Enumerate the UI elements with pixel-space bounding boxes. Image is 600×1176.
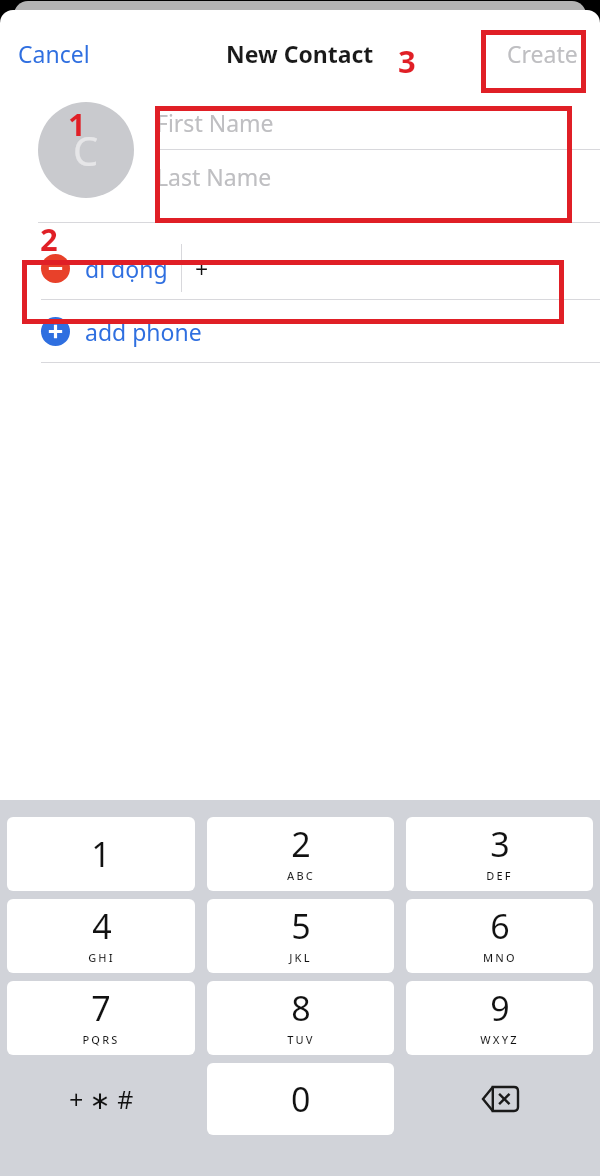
button[interactable]: add phone: [0, 300, 600, 362]
staticText: First Name: [156, 107, 274, 138]
button[interactable]: Cancel: [8, 30, 100, 77]
staticText: 6: [490, 903, 510, 949]
staticText: di động: [85, 253, 168, 284]
button[interactable]: 2: [207, 817, 394, 891]
button[interactable]: 4: [7, 899, 195, 973]
other: Remove phone: [41, 254, 70, 283]
button[interactable]: Backspace: [406, 1063, 593, 1135]
staticText: +: [195, 253, 209, 284]
staticText: 2: [291, 821, 311, 867]
staticText: Last Name: [156, 161, 272, 192]
staticText: 3: [398, 40, 416, 82]
staticText: + ∗ #: [69, 1082, 134, 1116]
button[interactable]: Last Name: [156, 150, 600, 203]
staticText: MNO: [483, 950, 517, 965]
button[interactable]: First Name: [156, 96, 600, 149]
button[interactable]: 0: [207, 1063, 394, 1135]
button[interactable]: 8: [207, 981, 394, 1055]
button[interactable]: 1: [7, 817, 195, 891]
staticText: DEF: [486, 868, 513, 883]
staticText: New Contact: [226, 38, 374, 69]
staticText: Create: [507, 38, 578, 69]
staticText: GHI: [88, 950, 115, 965]
button[interactable]: Create: [497, 30, 588, 77]
button[interactable]: Symbols: [7, 1063, 195, 1135]
button[interactable]: 5: [207, 899, 394, 973]
staticText: PQRS: [82, 1032, 120, 1047]
staticText: add phone: [85, 316, 202, 347]
staticText: 5: [291, 903, 311, 949]
staticText: 1: [91, 831, 111, 877]
staticText: 8: [291, 985, 311, 1031]
button[interactable]: Add photo: [38, 102, 134, 198]
staticText: 0: [291, 1076, 311, 1122]
button[interactable]: Remove phone: [0, 237, 600, 299]
staticText: 2: [40, 218, 58, 260]
staticText: ABC: [287, 868, 315, 883]
button[interactable]: 7: [7, 981, 195, 1055]
button[interactable]: 6: [406, 899, 593, 973]
staticText: Cancel: [18, 38, 90, 69]
staticText: TUV: [287, 1032, 315, 1047]
staticText: 9: [490, 985, 510, 1031]
staticText: C: [73, 123, 99, 177]
staticText: JKL: [289, 950, 312, 965]
staticText: 1: [68, 103, 86, 145]
button[interactable]: 9: [406, 981, 593, 1055]
staticText: 3: [490, 821, 510, 867]
button[interactable]: 3: [406, 817, 593, 891]
staticText: 4: [92, 903, 112, 949]
staticText: 7: [91, 985, 111, 1031]
staticText: WXYZ: [480, 1032, 519, 1047]
